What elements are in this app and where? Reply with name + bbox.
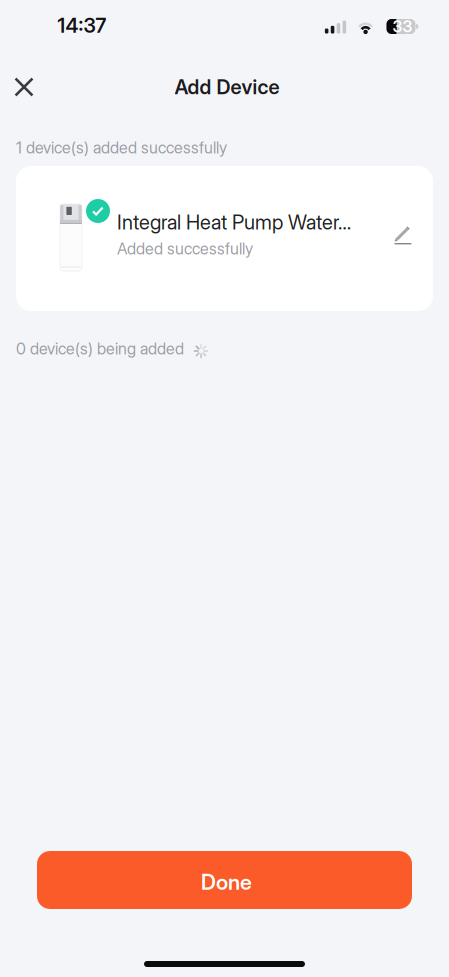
staticText: 0 device(s) being added — [16, 339, 184, 358]
staticText: Added successfully — [117, 239, 253, 258]
staticText: 33 — [392, 17, 412, 36]
staticText: 1 device(s) added successfully — [16, 138, 227, 157]
button[interactable]: Close — [1, 64, 47, 110]
button[interactable]: Done — [37, 851, 412, 909]
staticText: Integral Heat Pump Water… — [117, 210, 351, 234]
staticText: 14:37 — [57, 13, 106, 38]
button[interactable]: Rename device — [381, 213, 425, 257]
staticText: Done — [201, 869, 252, 895]
staticText: Add Device — [174, 75, 279, 99]
